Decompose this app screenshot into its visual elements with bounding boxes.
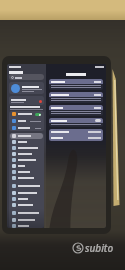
- button[interactable]: [10, 163, 43, 169]
- button[interactable]: [10, 125, 43, 131]
- button[interactable]: [49, 118, 103, 127]
- button[interactable]: [10, 139, 43, 145]
- button[interactable]: [10, 145, 43, 151]
- staticText: subito: [85, 241, 114, 255]
- button[interactable]: [10, 190, 43, 196]
- button[interactable]: [10, 175, 43, 181]
- button[interactable]: [10, 117, 43, 125]
- button[interactable]: [9, 82, 44, 94]
- button[interactable]: [9, 96, 44, 105]
- button[interactable]: [10, 202, 43, 208]
- button[interactable]: [10, 208, 43, 217]
- button[interactable]: [10, 151, 43, 157]
- button[interactable]: [49, 79, 103, 90]
- button[interactable]: [10, 111, 43, 117]
- button[interactable]: [10, 217, 43, 223]
- button[interactable]: Search: [9, 74, 44, 80]
- button[interactable]: [51, 129, 101, 135]
- button[interactable]: [10, 133, 43, 139]
- button[interactable]: [10, 181, 43, 190]
- button[interactable]: [10, 223, 43, 228]
- button[interactable]: [10, 157, 43, 163]
- button[interactable]: [51, 135, 101, 141]
- button[interactable]: [10, 196, 43, 202]
- button[interactable]: [10, 169, 43, 175]
- button[interactable]: [49, 105, 103, 116]
- button[interactable]: [49, 92, 103, 103]
